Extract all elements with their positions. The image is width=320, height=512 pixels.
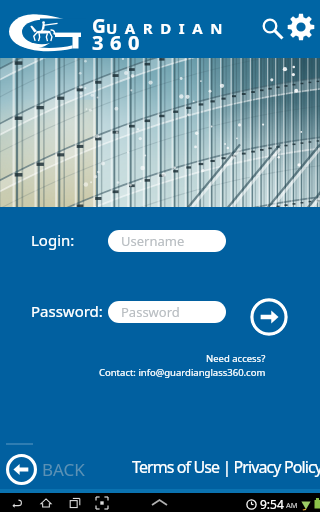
button[interactable]: Search (256, 12, 286, 42)
staticText: UARDIAN (106, 18, 231, 38)
staticText: Password (121, 303, 180, 321)
button[interactable]: Back (5, 453, 85, 485)
staticText: Username (121, 232, 185, 250)
button[interactable]: Screenshot (95, 493, 108, 512)
button[interactable]: Home (39, 493, 52, 512)
button[interactable]: Password (108, 301, 226, 323)
staticText: Login: (31, 230, 75, 250)
staticText: 9:54 (260, 496, 284, 512)
staticText: Terms of Use | Privacy Policy (132, 456, 320, 478)
other: Back (5, 453, 37, 485)
staticText: Need access? (206, 352, 266, 365)
button[interactable]: Settings (287, 13, 315, 41)
staticText: AM (286, 500, 298, 510)
staticText: BACK (42, 458, 85, 481)
button[interactable]: Back (10, 493, 23, 512)
staticText: G (92, 13, 106, 39)
button[interactable]: Terms of Use | Privacy Policy (132, 456, 320, 478)
button[interactable]: Recents (68, 493, 81, 512)
button[interactable]: Sign in (250, 298, 288, 336)
staticText: 360 (92, 29, 146, 56)
staticText: Contact: info@guardianglass360.com (99, 366, 266, 379)
button[interactable]: Username (108, 230, 226, 252)
staticText: Password: (31, 301, 103, 321)
